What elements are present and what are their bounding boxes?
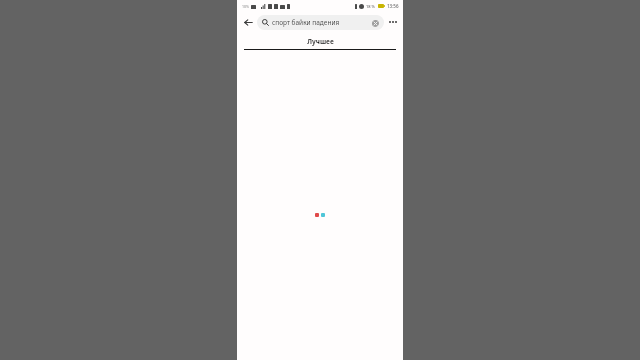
staticText: 10% [242, 4, 249, 9]
button[interactable]: Лучшее [243, 32, 397, 50]
staticText: спорт байки падения [272, 18, 371, 27]
button[interactable]: Back [241, 15, 255, 29]
button[interactable]: More options [387, 16, 399, 28]
button[interactable]: Clear [371, 19, 379, 27]
staticText: 18 % [366, 4, 376, 9]
staticText: Лучшее [307, 37, 334, 46]
staticText: 13:56 [387, 3, 399, 9]
button[interactable]: спорт байки падения [257, 15, 384, 30]
